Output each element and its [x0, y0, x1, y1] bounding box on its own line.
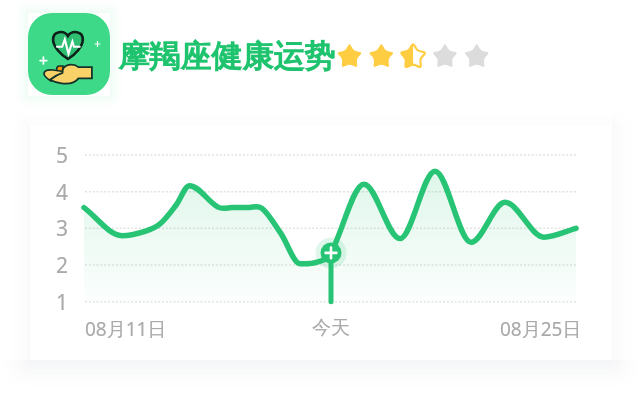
button[interactable]: Rating 2.5 of 5 stars	[336, 45, 492, 70]
staticText: 3	[56, 214, 69, 242]
staticText: 2	[56, 251, 69, 279]
staticText: 08月25日	[500, 316, 582, 342]
staticText: 今天	[312, 316, 350, 340]
staticText: 摩羯座健康运势	[118, 37, 335, 76]
staticText: 08月11日	[85, 316, 167, 342]
staticText: 4	[56, 178, 69, 206]
button[interactable]	[30, 125, 612, 360]
button[interactable]: Health fortune icon	[28, 13, 110, 95]
staticText: 5	[56, 141, 69, 169]
staticText: 1	[56, 288, 69, 316]
